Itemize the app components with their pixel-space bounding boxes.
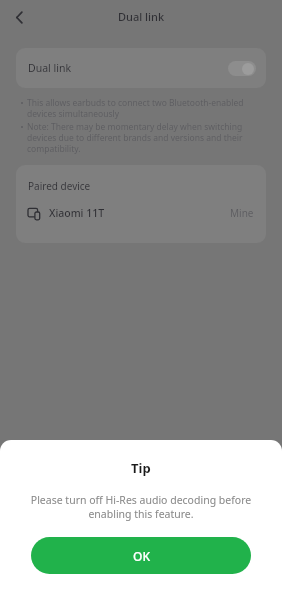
staticText: Paired device: [28, 179, 91, 193]
staticText: OK: [133, 548, 150, 564]
button[interactable]: Dual link toggle: [228, 61, 256, 76]
button[interactable]: Dual link: [16, 48, 266, 88]
staticText: Please turn off Hi-Res audio decoding be…: [13, 493, 269, 521]
staticText: Tip: [131, 459, 151, 477]
button[interactable]: OK: [31, 537, 251, 574]
button[interactable]: Xiaomi 11T: [16, 193, 266, 233]
button[interactable]: Back: [4, 2, 34, 32]
staticText: Mine: [230, 206, 254, 220]
staticText: Dual link: [28, 61, 71, 75]
staticText: Xiaomi 11T: [49, 206, 105, 220]
staticText: Dual link: [118, 9, 165, 24]
staticText: Note: There may be momentary delay when …: [27, 121, 264, 154]
staticText: This allows earbuds to connect two Bluet…: [27, 97, 264, 119]
